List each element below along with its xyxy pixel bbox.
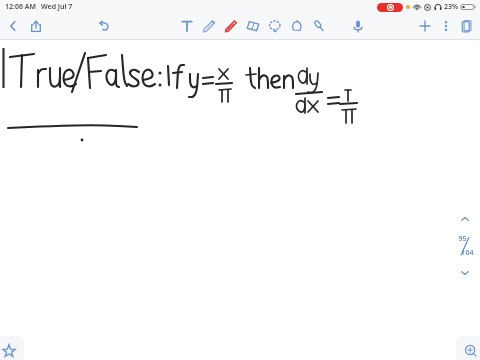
button[interactable]: Eraser	[244, 17, 262, 35]
button[interactable]: Zoom	[456, 336, 480, 360]
staticText: 12:06 AM	[5, 2, 36, 12]
button[interactable]: Highlighter	[222, 17, 240, 35]
button[interactable]: More options	[438, 18, 454, 34]
button[interactable]: Back	[4, 17, 22, 35]
staticText: Wed Jul 7	[41, 2, 73, 12]
button[interactable]: Next page	[455, 263, 475, 283]
staticText: 104	[461, 248, 474, 258]
button[interactable]: Lasso	[266, 17, 284, 35]
staticText: 23%	[444, 2, 459, 12]
button[interactable]: Previous page	[455, 209, 475, 229]
staticText: 95	[458, 234, 467, 244]
button[interactable]: Bookmark	[0, 336, 24, 360]
button[interactable]: Shape	[288, 17, 306, 35]
button[interactable]: Undo	[95, 17, 113, 35]
button[interactable]: Pen	[200, 17, 218, 35]
button[interactable]: Pages	[458, 17, 476, 35]
button[interactable]: Record audio	[349, 17, 367, 35]
button[interactable]: Page 95 of 104	[453, 231, 477, 261]
button[interactable]: Share	[27, 17, 45, 35]
button[interactable]: Add	[416, 17, 434, 35]
button[interactable]: Text tool	[178, 17, 196, 35]
button[interactable]: Ruler	[310, 17, 328, 35]
